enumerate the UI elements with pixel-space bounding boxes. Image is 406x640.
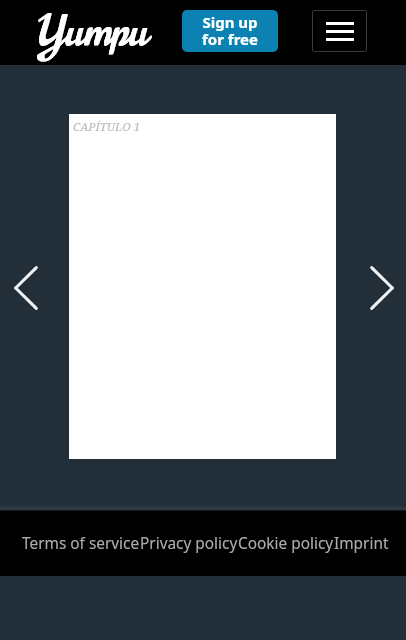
button[interactable]: Yumpu: [34, 2, 149, 60]
staticText: Yumpu: [34, 3, 149, 61]
button[interactable]: Imprint: [334, 533, 389, 554]
staticText: Yumpu: [34, 2, 149, 60]
button[interactable]: Sign up for free: [182, 10, 278, 52]
button[interactable]: Previous page: [0, 252, 52, 324]
staticText: CAPÍTULO 1: [73, 119, 141, 135]
staticText: Sign up for free: [202, 12, 258, 50]
button[interactable]: Privacy policy: [140, 533, 238, 554]
button[interactable]: Next page: [356, 252, 406, 324]
button[interactable]: Cookie policy: [238, 533, 334, 554]
button[interactable]: Terms of service: [22, 533, 140, 554]
button[interactable]: Menu: [312, 10, 367, 52]
staticText: Yumpu: [35, 2, 150, 60]
